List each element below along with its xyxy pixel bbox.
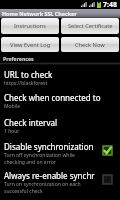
staticText: Select Certificate <box>68 22 113 30</box>
staticText: checking and on error <box>4 159 56 166</box>
staticText: Disable synchronization <box>4 141 94 152</box>
staticText: URL to check <box>4 69 53 80</box>
button[interactable]: Select Certificate <box>61 18 119 34</box>
button[interactable]: Disable synchronization <box>0 138 120 166</box>
button[interactable]: Check when connected to <box>0 89 120 112</box>
staticText: Check when connected to <box>4 92 101 103</box>
staticText: Always re-enable synchr <box>4 170 95 181</box>
staticText: Turn off synchronization while <box>4 152 75 159</box>
button[interactable]: View Event Log <box>1 37 59 52</box>
staticText: 1 hour <box>4 128 20 135</box>
staticText: Check Now <box>75 41 105 49</box>
staticText: 7:48 <box>103 0 117 9</box>
staticText: Home Network SSL Checker <box>2 10 77 17</box>
staticText: Check interval <box>4 117 58 128</box>
staticText: Instructions <box>14 22 47 30</box>
button[interactable]: URL to check <box>0 66 120 89</box>
staticText: View Event Log <box>10 41 51 49</box>
button[interactable]: Check Now <box>61 37 119 52</box>
staticText: Mobile <box>4 103 21 110</box>
button[interactable]: Instructions <box>1 18 59 34</box>
button[interactable]: Unchecked <box>102 174 113 185</box>
staticText: successful check <box>4 188 43 195</box>
button[interactable]: Checked <box>102 145 113 156</box>
button[interactable]: Check interval <box>0 114 120 137</box>
staticText: https://blackforest <box>4 80 48 87</box>
staticText: Turn on synchronization on each <box>4 181 81 188</box>
button[interactable]: Always re-enable synchr <box>0 167 120 195</box>
staticText: Preferences <box>3 55 34 62</box>
